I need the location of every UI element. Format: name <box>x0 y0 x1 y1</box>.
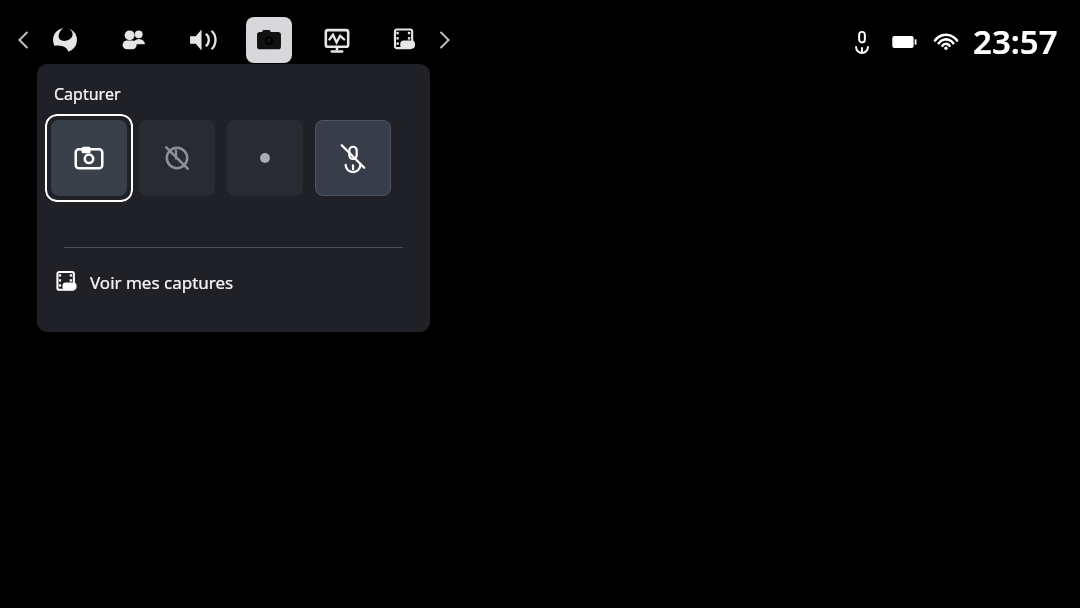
button[interactable]: Previous <box>8 25 38 55</box>
staticText: 23:57 <box>973 19 1058 64</box>
button[interactable]: Enregistrer les 30 dernières secondes <box>139 120 215 196</box>
button[interactable]: Gallery <box>382 17 428 63</box>
button[interactable]: Capturer une capture d'écran <box>51 120 127 196</box>
button[interactable]: Audio <box>178 17 224 63</box>
button[interactable]: Capture <box>246 17 292 63</box>
button[interactable]: Micro désactivé <box>315 120 391 196</box>
button[interactable]: Voir mes captures <box>55 262 234 302</box>
button[interactable]: Next <box>430 25 460 55</box>
staticText: Capturer <box>54 83 121 105</box>
button[interactable]: Démarrer l'enregistrement <box>227 120 303 196</box>
staticText: Voir mes captures <box>90 271 234 294</box>
button[interactable]: Performance <box>314 17 360 63</box>
button[interactable]: Microphone <box>847 27 877 57</box>
button[interactable]: Social <box>110 17 156 63</box>
button[interactable]: Wi-Fi <box>931 27 961 57</box>
button[interactable]: Microsoft Edge <box>42 17 88 63</box>
button[interactable]: Battery <box>889 27 919 57</box>
